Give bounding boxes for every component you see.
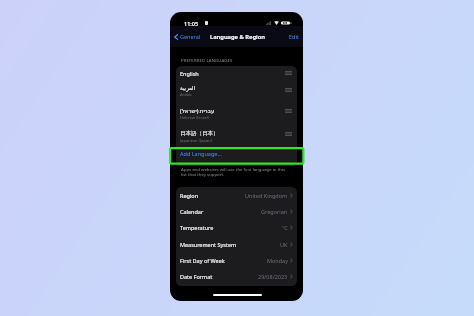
staticText: English — [180, 70, 199, 77]
staticText: First Day of Week — [180, 257, 225, 264]
button[interactable]: Date Format — [176, 268, 297, 284]
staticText: Add Language... — [180, 150, 222, 157]
button[interactable]: Edit — [287, 31, 303, 42]
staticText: PREFERRED LANGUAGES — [181, 57, 233, 63]
staticText: Arabic — [180, 92, 193, 98]
staticText: Hebrew (Israel) — [180, 115, 210, 121]
staticText: Apps and websites will use the first lan… — [181, 166, 286, 178]
staticText: 29/08/2023 — [258, 273, 288, 280]
staticText: Gregorian — [261, 208, 288, 215]
button[interactable]: General — [170, 31, 203, 42]
staticText: עברית (ישראל) — [180, 107, 215, 114]
staticText: UK — [280, 241, 288, 248]
button[interactable]: Temperature — [176, 219, 297, 235]
staticText: Date Format — [180, 273, 213, 280]
staticText: General — [180, 33, 201, 40]
staticText: Japanese (Japan) — [180, 138, 212, 144]
button[interactable]: עברית (ישראל) — [176, 103, 297, 125]
button[interactable]: Calendar — [176, 203, 297, 219]
button[interactable]: English — [176, 66, 297, 80]
staticText: 11:05 — [184, 20, 199, 27]
staticText: 日本語（日本） — [180, 130, 219, 137]
staticText: Language & Region — [210, 33, 265, 41]
staticText: Temperature — [180, 224, 214, 231]
button[interactable]: العربية — [176, 80, 297, 103]
staticText: Calendar — [180, 208, 204, 215]
staticText: Measurement System — [180, 241, 237, 248]
button[interactable]: 日本語（日本） — [176, 125, 297, 147]
staticText: العربية — [180, 85, 196, 91]
staticText: °C — [282, 224, 288, 231]
staticText: Region — [180, 192, 199, 199]
button[interactable]: Region — [176, 187, 297, 203]
staticText: Monday — [267, 257, 288, 264]
button[interactable]: First Day of Week — [176, 252, 297, 268]
button[interactable]: Add Language... — [176, 147, 297, 166]
staticText: United Kingdom — [245, 192, 288, 199]
button[interactable]: Measurement System — [176, 236, 297, 252]
